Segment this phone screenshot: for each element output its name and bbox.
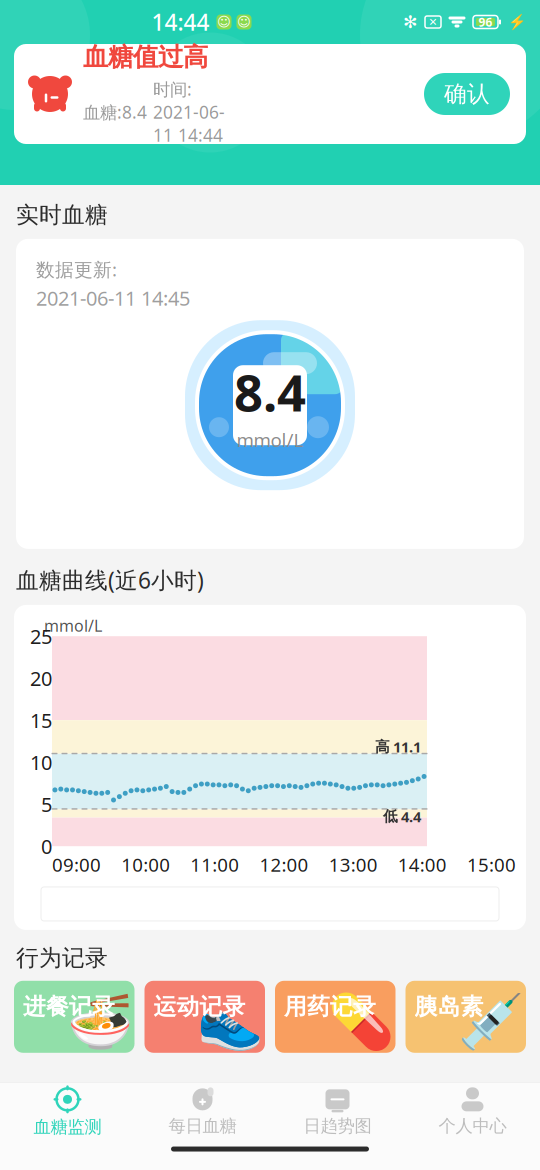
staticText: 15	[30, 707, 52, 733]
button[interactable]: 🍜	[14, 981, 134, 1053]
staticText: 每日血糖	[168, 1115, 236, 1137]
staticText: 15:00	[467, 852, 516, 877]
staticText: 血糖监测	[33, 1116, 101, 1138]
staticText: 时间:2021-06-11 14:44	[153, 77, 225, 147]
staticText: ⚡	[508, 14, 526, 30]
staticText: 血糖:8.4	[83, 100, 147, 123]
button[interactable]: 确认	[424, 73, 510, 115]
staticText: 4.4	[401, 807, 421, 826]
staticText: 高	[375, 738, 390, 756]
button[interactable]: 日趋势图	[270, 1082, 405, 1140]
staticText: 10	[30, 749, 52, 775]
staticText: 💉	[458, 991, 524, 1052]
staticText: 胰岛素	[414, 993, 483, 1021]
button[interactable]: 每日血糖	[135, 1082, 270, 1140]
staticText: 血糖曲线(近6小时)	[16, 565, 204, 595]
staticText: 运动记录	[153, 993, 245, 1021]
staticText: 血糖值过高	[83, 41, 208, 72]
staticText: 11:00	[190, 852, 239, 877]
staticText: 12:00	[259, 852, 308, 877]
staticText: ☺	[217, 14, 231, 29]
staticText: 10:00	[121, 852, 170, 877]
staticText: ✕	[428, 16, 437, 28]
staticText: 低	[383, 807, 398, 825]
staticText: mmol/L	[44, 615, 102, 636]
staticText: 20	[30, 665, 52, 691]
button[interactable]: 个人中心	[405, 1082, 540, 1140]
button[interactable]: 💉	[405, 981, 526, 1053]
staticText: 8.4	[234, 358, 306, 425]
staticText: ☺	[237, 14, 251, 29]
staticText: mmol/L	[236, 427, 303, 452]
staticText: 0	[41, 833, 52, 859]
staticText: 👟	[197, 991, 263, 1052]
staticText: 个人中心	[438, 1115, 506, 1137]
staticText: 5	[41, 791, 52, 817]
staticText: ✻	[403, 12, 418, 32]
staticText: 实时血糖	[16, 201, 108, 229]
staticText: 13:00	[329, 852, 378, 877]
staticText: 💊	[327, 991, 393, 1052]
staticText: 日趋势图	[303, 1115, 371, 1137]
staticText: 14:00	[398, 852, 447, 877]
staticText: 🍜	[66, 991, 132, 1052]
staticText: 09:00	[52, 852, 101, 877]
staticText: 行为记录	[16, 944, 108, 972]
staticText: 96	[478, 14, 492, 30]
button[interactable]: 血糖监测	[0, 1082, 135, 1140]
staticText: 用药记录	[284, 993, 376, 1021]
staticText: 11.1	[393, 737, 421, 757]
button[interactable]: 💊	[275, 981, 395, 1053]
staticText: 进餐记录	[23, 993, 115, 1021]
staticText: 25	[30, 623, 52, 649]
staticText: 2021-06-11 14:45	[36, 285, 190, 311]
staticText: 数据更新:	[36, 257, 117, 282]
button[interactable]: 👟	[144, 981, 265, 1053]
staticText: 确认	[444, 80, 490, 108]
staticText: 14:44	[151, 7, 209, 37]
